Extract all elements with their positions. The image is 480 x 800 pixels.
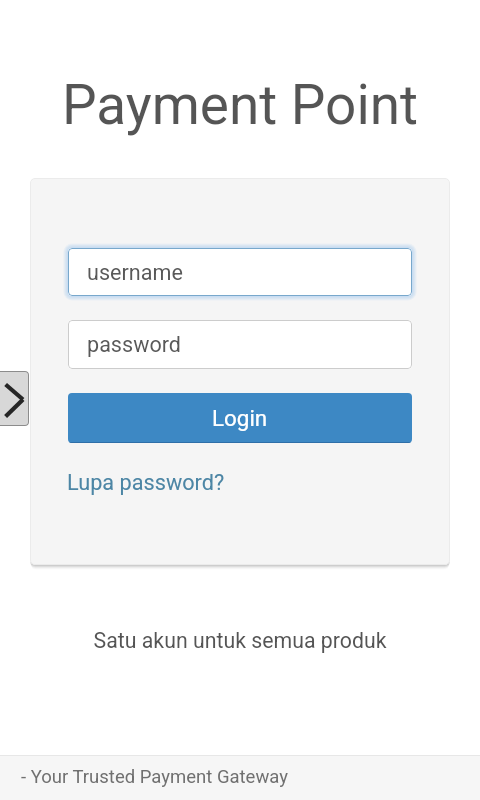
staticText: Satu akun untuk semua produk (0, 628, 480, 653)
button[interactable]: Open menu (0, 371, 29, 426)
staticText: - Your Trusted Payment Gateway (21, 766, 288, 788)
staticText: Payment Point (0, 73, 480, 137)
staticText: Login (212, 405, 268, 431)
button[interactable]: Lupa password? (67, 466, 225, 499)
button[interactable]: username (68, 248, 412, 296)
button[interactable]: password (68, 320, 412, 369)
staticText: Lupa password? (67, 470, 225, 495)
staticText: username (87, 260, 183, 285)
staticText: password (87, 332, 181, 357)
button[interactable]: Login (68, 393, 412, 443)
